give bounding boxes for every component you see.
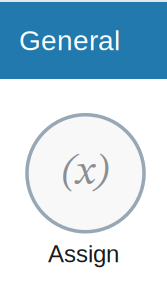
staticText: Assign xyxy=(48,240,119,267)
button[interactable]: (x) xyxy=(0,79,167,285)
staticText: General xyxy=(19,25,120,56)
staticText: (x) xyxy=(62,153,109,194)
